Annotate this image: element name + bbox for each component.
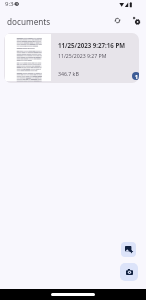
staticText: 11/25/2023 9:27 PM [58,52,107,59]
button[interactable]: Refresh [108,11,126,29]
staticText: 346.7 kB [58,70,79,77]
button[interactable]: Add image [121,242,136,257]
button[interactable]: Take photo [120,263,138,281]
button[interactable]: Settings [127,11,145,29]
staticText: 9:34 [5,0,17,8]
button[interactable]: 11/25/2023 9:27:16 PM [4,33,139,83]
staticText: 1 [135,73,138,80]
staticText: documents [7,16,51,27]
staticText: 11/25/2023 9:27:16 PM [58,41,126,49]
